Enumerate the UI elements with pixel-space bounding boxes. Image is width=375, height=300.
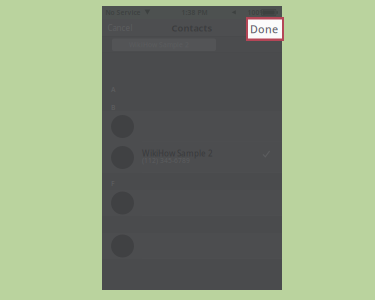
button[interactable]: Done	[250, 19, 278, 37]
staticText: 1:38 PM	[181, 8, 207, 17]
staticText: WikiHow Sample 2	[142, 148, 213, 159]
staticText: (112) 345-6789	[142, 156, 190, 165]
button[interactable]: Done	[246, 17, 284, 41]
staticText: Contacts	[171, 22, 212, 34]
button[interactable]: Cancel	[105, 19, 135, 37]
staticText: Done	[253, 23, 274, 33]
staticText: B	[111, 103, 115, 112]
staticText: Done	[250, 22, 278, 36]
staticText: F	[111, 179, 115, 188]
staticText: A	[111, 85, 115, 94]
button[interactable]: WikiHow Sample 2	[102, 142, 282, 173]
staticText: Cancel	[107, 23, 132, 33]
staticText: 100%	[247, 8, 265, 17]
button[interactable]: Contact	[102, 111, 282, 142]
button[interactable]: Contact	[102, 190, 282, 216]
button[interactable]: Contact	[102, 233, 282, 259]
staticText: No Service	[106, 8, 141, 17]
